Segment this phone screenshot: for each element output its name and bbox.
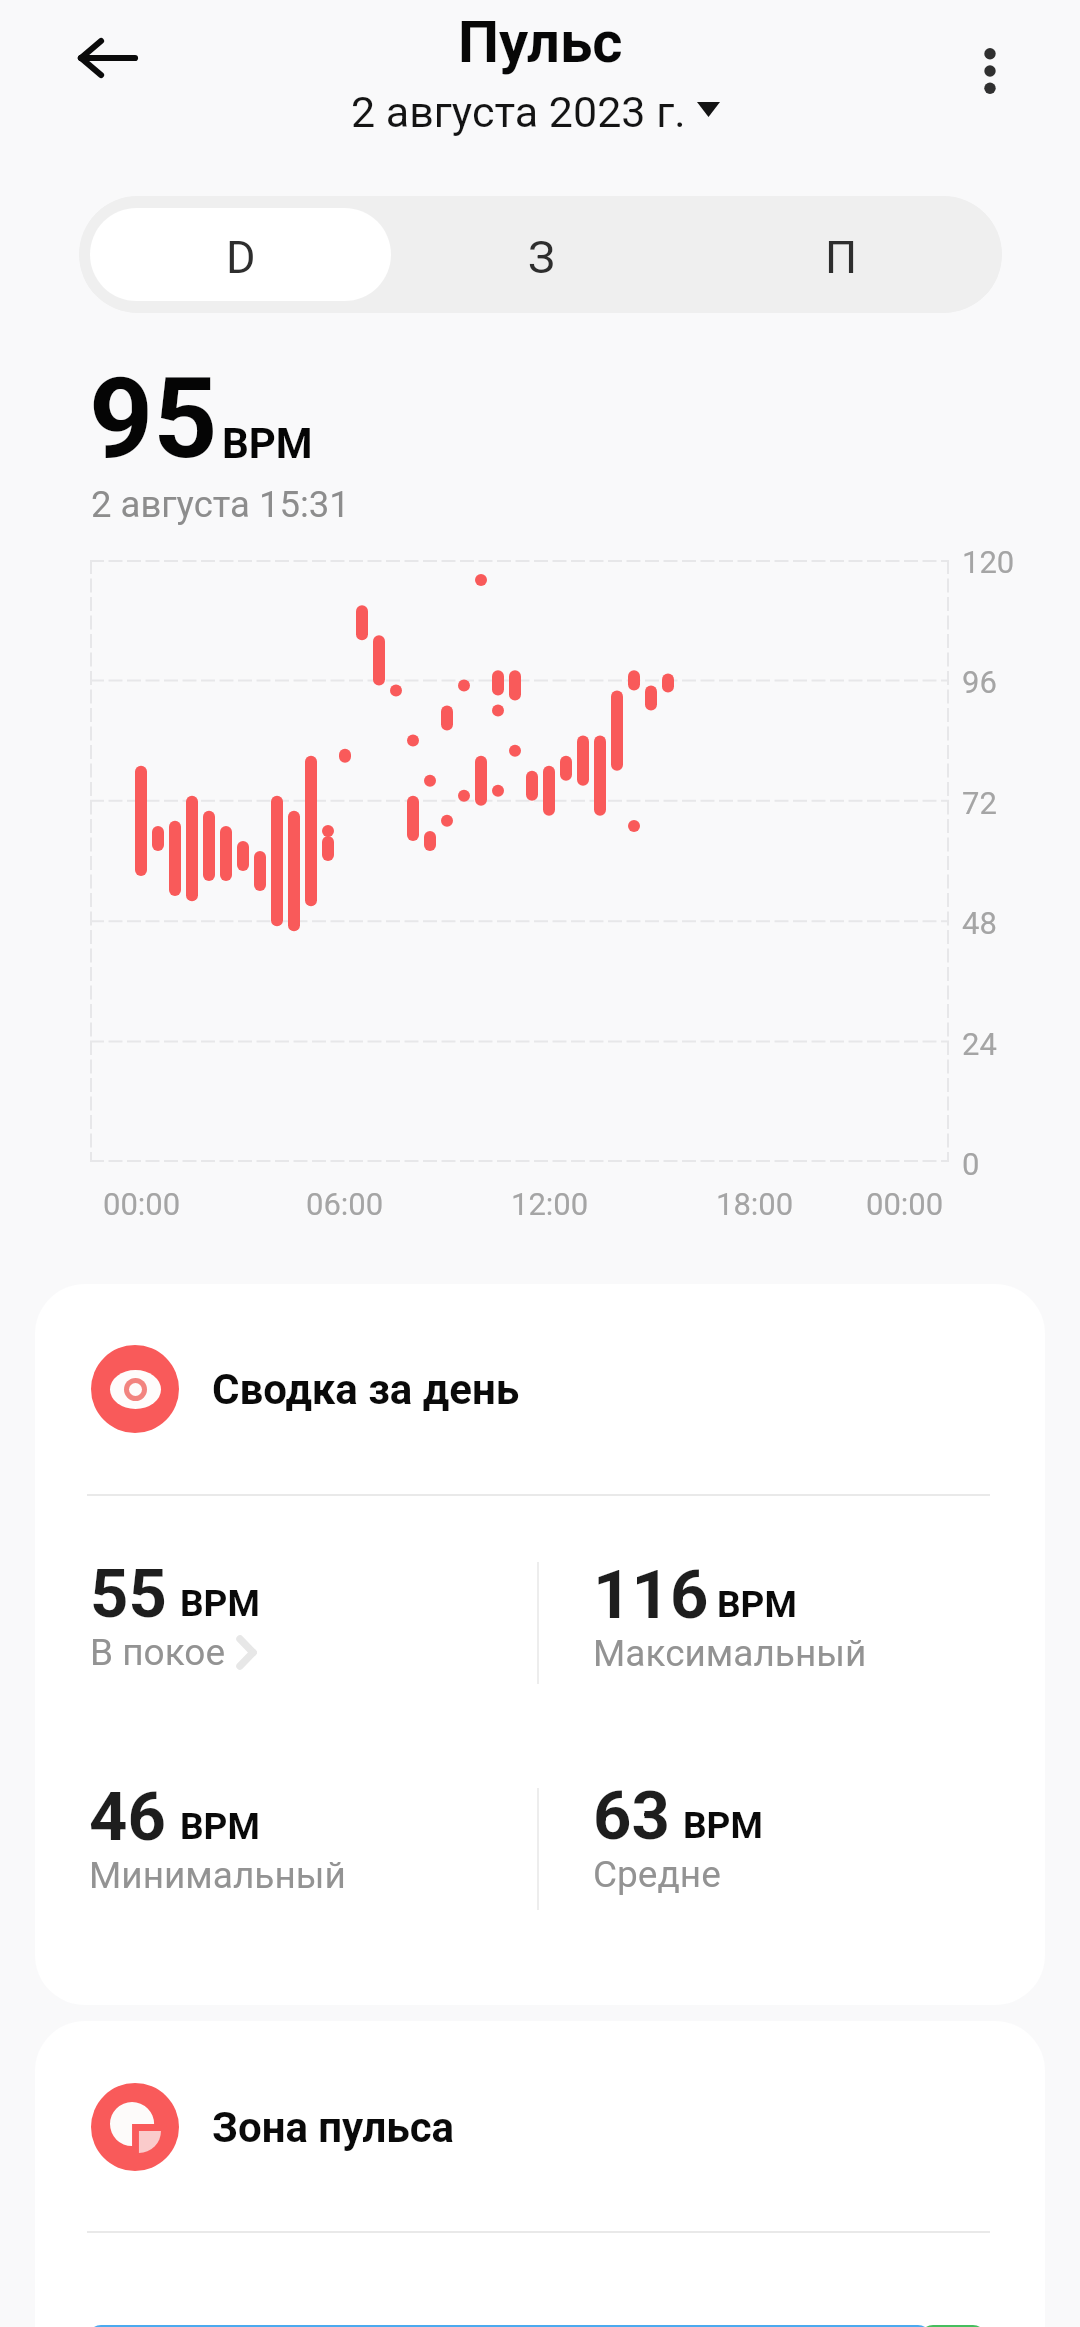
staticText: 24 (962, 1026, 997, 1062)
staticText: 120 (962, 544, 1015, 580)
staticText: 48 (962, 905, 997, 941)
staticText: 00:00 (103, 1186, 181, 1222)
button[interactable]: D (90, 208, 391, 301)
staticText: 12:00 (511, 1186, 589, 1222)
button[interactable]: 63 (593, 1777, 670, 1856)
button[interactable]: П (691, 208, 991, 301)
staticText: 55 (90, 1555, 167, 1634)
staticText: З (528, 231, 555, 284)
staticText: 95 (89, 353, 218, 484)
staticText: Средне (593, 1853, 721, 1896)
staticText: 00:00 (866, 1186, 944, 1222)
staticText: Пульс (458, 8, 623, 76)
button[interactable]: Back (56, 6, 160, 110)
staticText: В покое (90, 1631, 226, 1674)
staticText: Сводка за день (212, 1365, 520, 1414)
button[interactable]: 55 (90, 1555, 167, 1634)
button[interactable]: 2 августа 2023 г. (351, 87, 720, 137)
staticText: Зона пульса (212, 2103, 455, 2152)
staticText: 2 августа 2023 г. (351, 87, 686, 137)
staticText: BPM (180, 1805, 260, 1848)
button[interactable]: В покое (90, 1631, 257, 1674)
staticText: 06:00 (306, 1186, 384, 1222)
button[interactable]: 46 (89, 1778, 166, 1857)
staticText: Максимальный (593, 1632, 867, 1675)
staticText: 96 (962, 664, 997, 700)
staticText: BPM (717, 1583, 797, 1626)
button[interactable]: Средне (593, 1853, 721, 1896)
staticText: 46 (89, 1778, 166, 1857)
staticText: D (226, 231, 256, 284)
staticText: BPM (180, 1582, 260, 1625)
button[interactable]: З (391, 208, 691, 301)
staticText: 63 (593, 1777, 670, 1856)
button[interactable]: More options (938, 19, 1042, 123)
staticText: П (825, 231, 858, 284)
staticText: 2 августа 15:31 (91, 483, 350, 526)
button[interactable]: Максимальный (593, 1632, 867, 1675)
staticText: BPM (683, 1804, 763, 1847)
button[interactable]: Минимальный (89, 1854, 346, 1897)
staticText: 18:00 (716, 1186, 794, 1222)
button[interactable]: 116 (593, 1556, 709, 1635)
staticText: 0 (962, 1146, 980, 1182)
staticText: Минимальный (89, 1854, 346, 1897)
staticText: BPM (222, 419, 313, 468)
staticText: 72 (962, 785, 997, 821)
staticText: 116 (593, 1556, 709, 1635)
